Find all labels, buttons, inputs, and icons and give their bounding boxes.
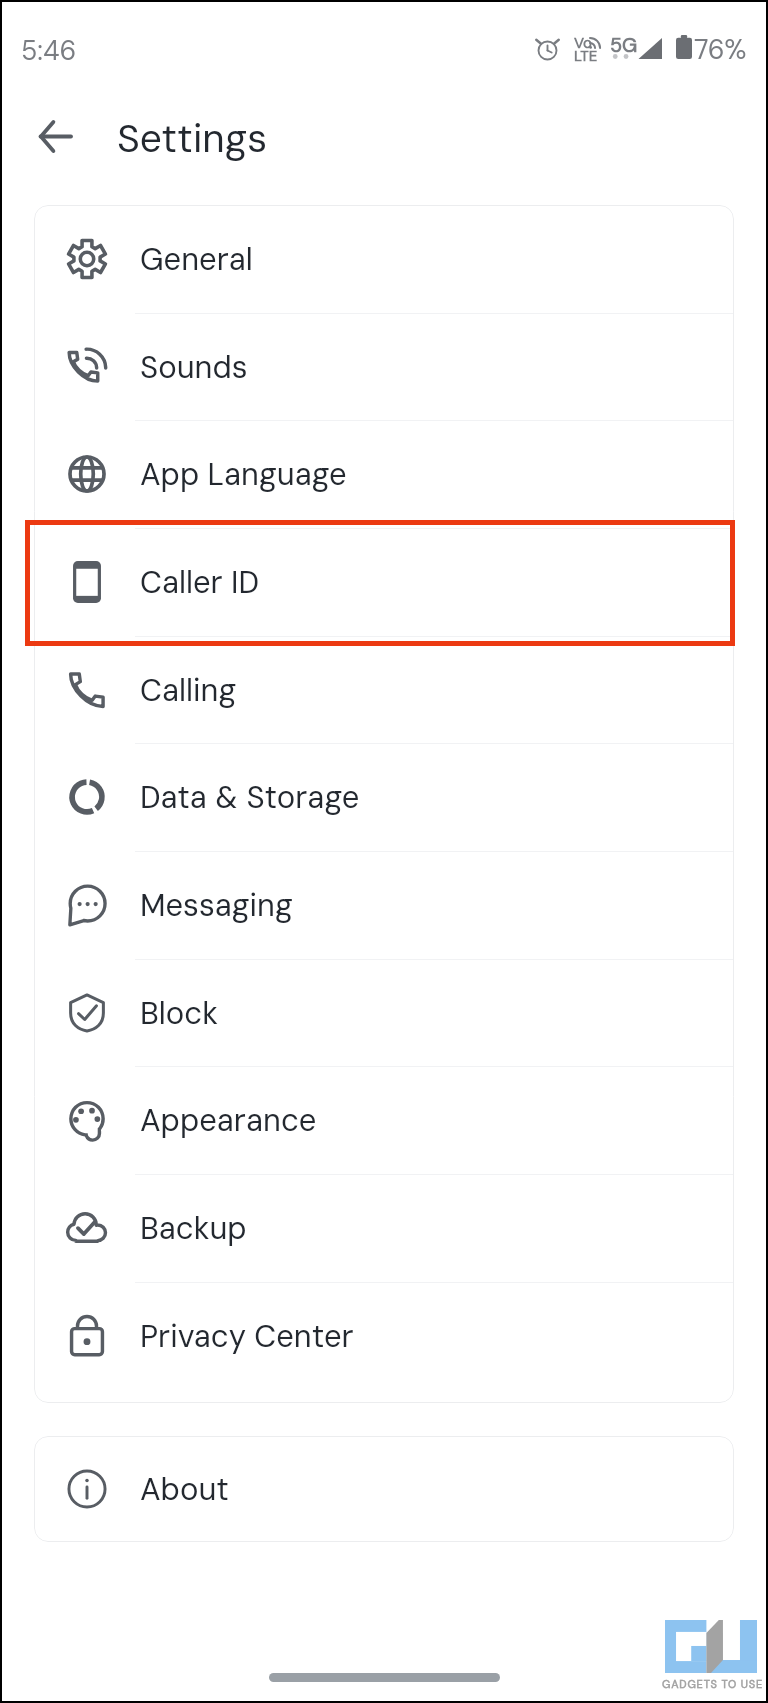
staticText: Vo [574,33,593,53]
staticText: General [140,239,253,279]
staticText: About [140,1469,229,1509]
staticText: App Language [140,454,347,494]
staticText: Privacy Center [140,1316,354,1356]
button[interactable]: Block [34,959,734,1067]
staticText: Block [140,993,218,1033]
staticText: Data & Storage [140,777,360,817]
staticText: 5G [610,32,638,58]
staticText: 5:46 [21,33,77,68]
staticText: LTE [574,46,598,66]
staticText: Settings [117,113,268,164]
staticText: Appearance [140,1100,317,1140]
button[interactable]: About [34,1436,734,1542]
staticText: Calling [140,670,237,710]
staticText: 76% [694,32,747,67]
button[interactable]: Sounds [34,313,734,421]
button[interactable]: Privacy Center [34,1282,734,1390]
staticText: Messaging [140,885,293,925]
button[interactable]: App Language [34,420,734,528]
staticText: Sounds [140,347,248,387]
button[interactable]: Calling [34,636,734,744]
button[interactable]: Appearance [34,1066,734,1174]
button[interactable]: Data & Storage [34,743,734,851]
staticText: GADGETS TO USE [662,1677,764,1691]
staticText: Caller ID [140,562,260,602]
button[interactable]: Caller ID [34,528,734,636]
button[interactable]: General [34,205,734,313]
staticText: Backup [140,1208,247,1248]
button[interactable]: Messaging [34,851,734,959]
button[interactable]: Back [26,107,84,165]
button[interactable]: Backup [34,1174,734,1282]
